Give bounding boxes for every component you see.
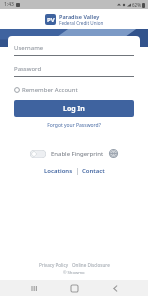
staticText: PV [47,16,55,24]
button[interactable]: Username [14,44,134,56]
staticText: 1:43 [4,1,14,8]
button[interactable]: Back [108,281,122,295]
button[interactable]: Enable Fingerprint [30,150,46,158]
staticText: Paradise Valley [59,13,100,20]
button[interactable]: Online Disclosure [72,262,110,268]
staticText: Password [14,65,42,73]
staticText: Log In [63,104,85,114]
button[interactable]: Fingerprint login [109,149,118,158]
button[interactable]: Home [67,281,81,295]
button[interactable]: Forgot your Password? [14,122,134,129]
button[interactable]: Recent apps [27,281,41,295]
button[interactable]: Log In [14,100,134,117]
staticText: 62% [132,2,141,8]
button[interactable]: Locations [44,167,73,175]
staticText: Federal Credit Union [59,20,104,26]
staticText: © Showmo [63,270,85,276]
button[interactable]: Remember Account [14,86,78,94]
button[interactable]: Contact [82,167,105,175]
staticText: Remember Account [22,86,78,94]
button[interactable]: Privacy Policy [39,262,68,268]
button[interactable]: Password [14,65,134,77]
staticText: Enable Fingerprint [51,150,104,158]
staticText: Username [14,44,44,52]
